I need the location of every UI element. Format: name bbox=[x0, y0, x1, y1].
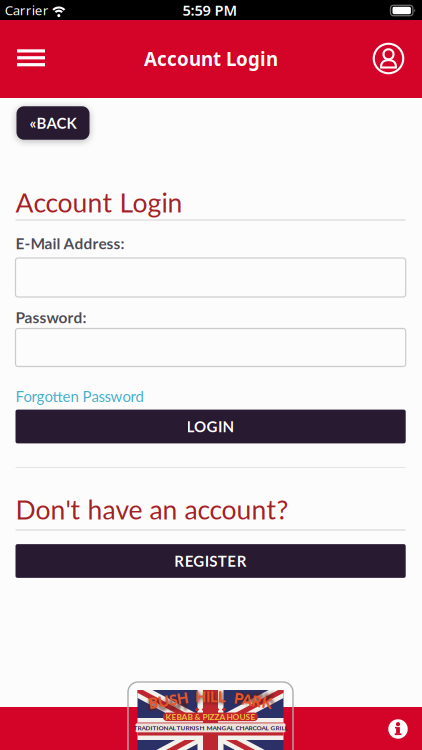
button[interactable]: Info bbox=[387, 718, 409, 740]
staticText: HILL bbox=[195, 688, 226, 705]
button[interactable]: REGISTER bbox=[15, 544, 406, 578]
staticText: Don't have an account? bbox=[15, 493, 288, 525]
staticText: REGISTER bbox=[174, 552, 247, 570]
staticText: Account Login bbox=[144, 46, 278, 71]
button[interactable]: Back bbox=[16, 106, 89, 140]
button[interactable]: Forgotten Password bbox=[15, 387, 143, 405]
staticText: KEBAB & PIZZA HOUSE bbox=[165, 712, 255, 722]
button[interactable]: Menu bbox=[17, 49, 45, 66]
staticText: «BACK bbox=[29, 114, 76, 132]
staticText: BUSH bbox=[148, 692, 188, 709]
staticText: 5:59 PM bbox=[182, 0, 237, 20]
staticText: TRADITIONAL TURKISH MANGAL CHARCOAL GRIL… bbox=[133, 724, 287, 732]
staticText: E-Mail Address: bbox=[15, 234, 124, 252]
button[interactable]: LOGIN bbox=[15, 410, 406, 443]
button[interactable]: Account bbox=[372, 42, 404, 74]
staticText: Carrier bbox=[5, 1, 49, 19]
staticText: Forgotten Password bbox=[15, 387, 143, 405]
staticText: LOGIN bbox=[187, 417, 235, 436]
staticText: Account Login bbox=[15, 186, 182, 218]
staticText: PARK bbox=[234, 692, 272, 709]
staticText: Password: bbox=[15, 308, 86, 326]
